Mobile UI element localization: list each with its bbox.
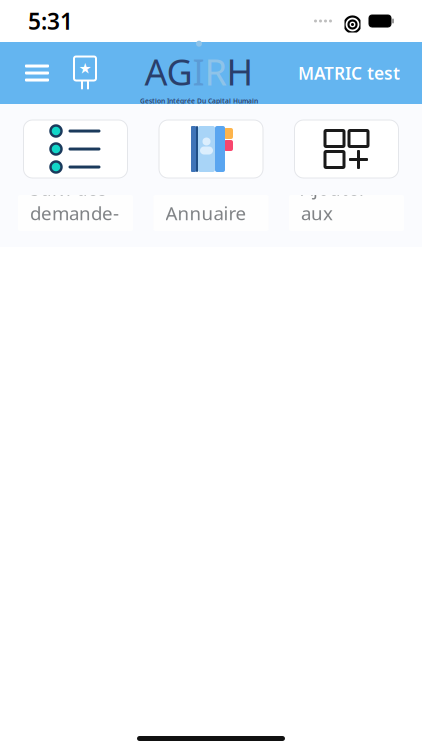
button[interactable]: Ajouter aux favoris [289,120,404,231]
button[interactable]: Favoris [62,42,108,104]
button[interactable]: Menu [12,42,62,104]
button[interactable]: Suivi des demandes [18,120,133,231]
staticText: Ajouter aux favoris [301,176,367,250]
staticText: I [192,48,204,95]
staticText: Annuaire [165,201,246,225]
staticText: AG [144,48,192,95]
button[interactable]: MATRIC test [290,42,408,104]
staticText: 5:31 [28,6,73,36]
staticText: MATRIC test [298,61,400,84]
staticText: R [204,48,226,95]
button[interactable]: Annuaire [153,120,268,231]
staticText: Suivi des demandes [30,176,119,250]
staticText: Gestion Intégrée Du Capital Humain [140,96,258,105]
staticText: H [226,48,253,95]
staticText: ★ [78,60,91,77]
